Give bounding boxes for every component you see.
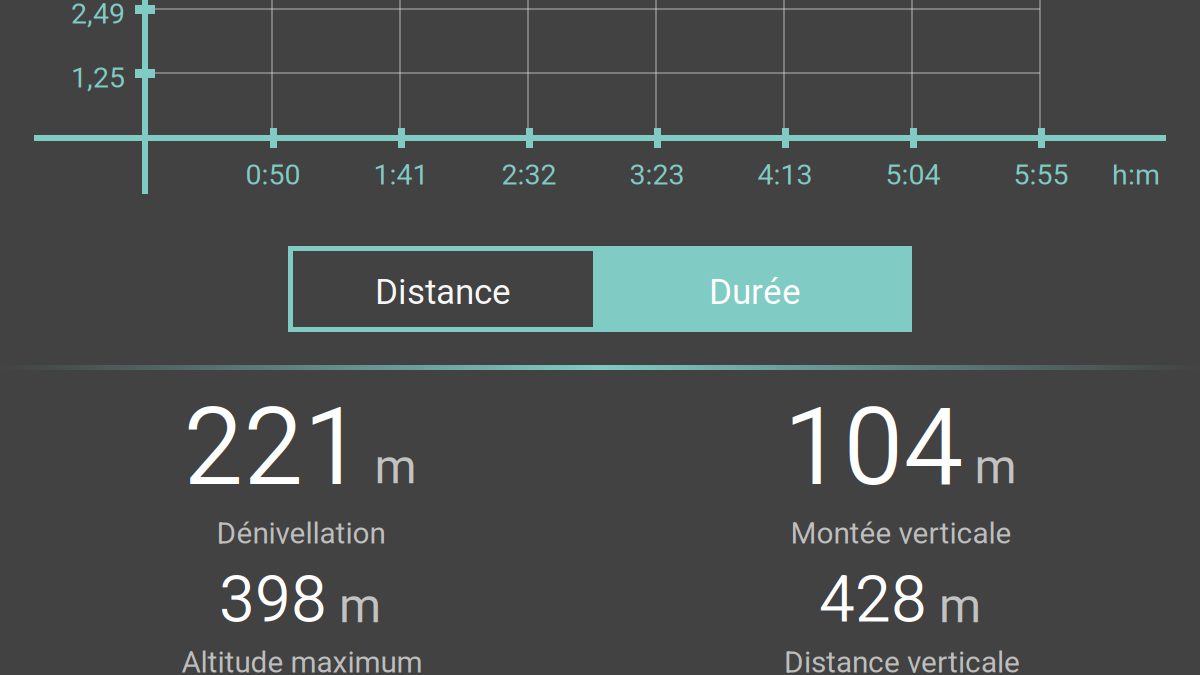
staticText: Durée [709,271,801,313]
staticText: 5:55 [1013,158,1068,191]
staticText: Dénivellation [216,516,385,551]
staticText: 398 [219,562,327,637]
staticText: m [974,439,1016,495]
staticText: h:m [1112,158,1160,191]
staticText: 1,25 [71,61,125,94]
staticText: Altitude maximum [181,645,422,675]
staticText: 221 [183,385,363,510]
staticText: Distance [375,271,511,313]
staticText: 1:41 [373,158,428,191]
staticText: Distance verticale [784,645,1020,675]
button[interactable]: Durée [598,246,912,332]
staticText: 2,49 [71,0,125,30]
button[interactable]: Distance [288,246,598,332]
staticText: m [939,578,981,634]
staticText: 0:50 [245,158,300,191]
staticText: m [374,439,416,495]
staticText: 4:13 [757,158,812,191]
staticText: 5:04 [885,158,940,191]
staticText: 2:32 [501,158,556,191]
staticText: m [339,578,381,634]
staticText: Montée verticale [790,516,1011,551]
staticText: 104 [783,385,963,510]
staticText: 428 [819,562,927,637]
staticText: 3:23 [629,158,684,191]
